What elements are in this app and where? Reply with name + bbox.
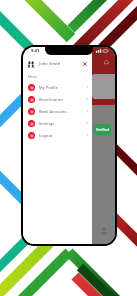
staticText: Logout <box>39 133 53 138</box>
staticText: Beneficiaries <box>39 97 64 102</box>
staticText: My Profile <box>39 85 58 90</box>
staticText: 9:41 <box>31 48 40 54</box>
staticText: Menu <box>28 74 38 79</box>
staticText: Bank Accounts <box>39 109 67 114</box>
button[interactable]: John Smith <box>27 59 87 69</box>
button[interactable]: Verified <box>94 124 111 135</box>
staticText: John Smith <box>39 61 61 67</box>
button[interactable]: Bank Accounts <box>23 105 92 117</box>
button[interactable]: My Profile <box>23 81 92 93</box>
button[interactable]: Notifications <box>103 59 110 66</box>
staticText: Settings <box>39 121 55 126</box>
button[interactable]: Settings <box>23 117 92 129</box>
button[interactable]: Close menu <box>82 61 88 67</box>
staticText: Verified <box>96 127 109 132</box>
button[interactable]: Logout <box>23 129 92 141</box>
button[interactable]: Beneficiaries <box>23 93 92 105</box>
